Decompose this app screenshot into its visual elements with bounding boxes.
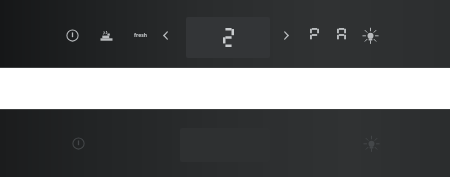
- button[interactable]: [186, 17, 270, 58]
- button[interactable]: Programme: [306, 26, 322, 44]
- button[interactable]: Oven light: [361, 26, 379, 44]
- button[interactable]: Increase: [278, 27, 294, 43]
- button[interactable]: Power: [70, 135, 87, 152]
- button[interactable]: Automatic: [333, 26, 349, 44]
- button[interactable]: fresh: [128, 28, 152, 42]
- button[interactable]: Oven light: [362, 134, 380, 152]
- staticText: fresh: [134, 32, 147, 39]
- button[interactable]: Decrease: [157, 27, 173, 43]
- button[interactable]: Power: [64, 27, 81, 44]
- button[interactable]: Steam cooking: [97, 27, 115, 45]
